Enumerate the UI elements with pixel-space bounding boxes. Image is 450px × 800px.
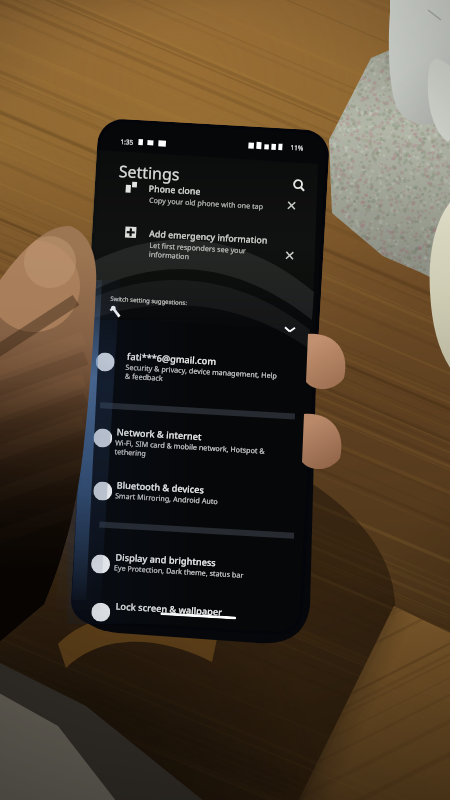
button[interactable] [114,219,316,262]
button[interactable]: Expand suggestions [281,321,298,337]
staticText: Switch setting suggestions: [110,295,187,307]
staticText: Lock screen & wallpaper [115,599,223,619]
staticText: Eye Protection, Dark theme, status bar [114,562,244,580]
staticText: fati***6@gmail.com [127,350,217,368]
button[interactable] [115,174,316,217]
staticText: Add emergency information [149,228,268,247]
button[interactable] [86,469,293,516]
staticText: Copy your old phone with one tap [149,195,264,211]
staticText: Settings [118,160,180,185]
button[interactable] [84,541,291,588]
staticText: 1:35 [120,137,134,147]
button[interactable] [86,416,293,471]
staticText: Network & internet [116,425,202,443]
button[interactable]: Dismiss suggestion [280,245,299,264]
button[interactable] [85,590,291,632]
staticText: Security & privacy, device management, H… [125,362,277,389]
staticText: Wi-Fi, SIM card & mobile network, Hotspo… [114,437,265,465]
staticText: 11% [290,143,304,152]
button[interactable] [88,340,296,395]
staticText: Smart Mirroring, Android Auto [115,490,218,506]
button[interactable]: Search [288,174,311,197]
staticText: Display and brightness [115,550,217,569]
staticText: Phone clone [148,183,201,198]
staticText: Let first responders see your informatio… [149,240,247,264]
staticText: Bluetooth & devices [116,478,205,496]
button[interactable]: Dismiss suggestion [282,195,301,214]
